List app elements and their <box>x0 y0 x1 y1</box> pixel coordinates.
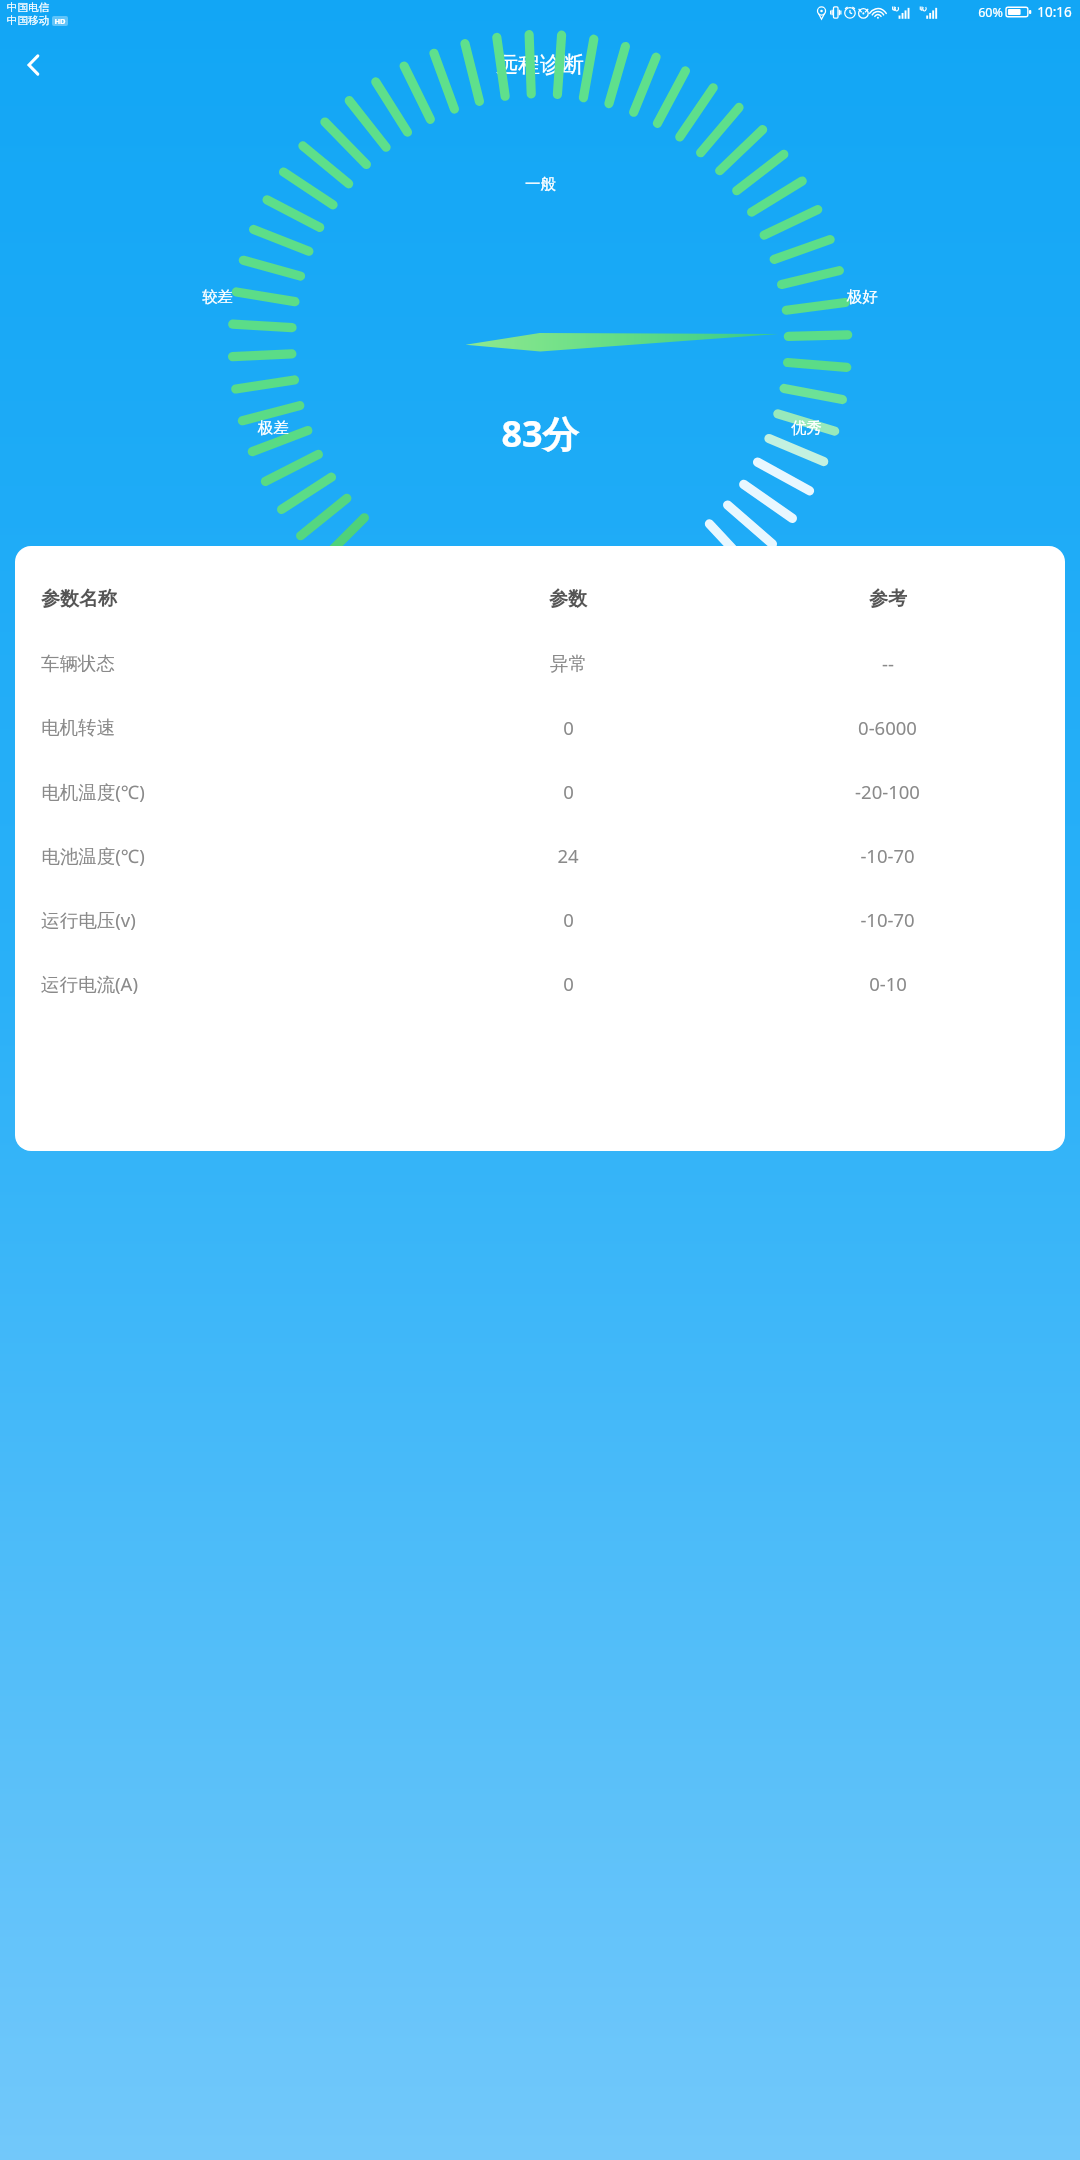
staticText: 运行电流(A) <box>41 971 138 996</box>
button[interactable]: 运行电压(v) <box>15 898 1065 940</box>
staticText: 0-6000 <box>858 715 917 740</box>
staticText: 电池温度(℃) <box>41 843 145 868</box>
staticText: -20-100 <box>855 779 920 804</box>
staticText: 中国电信 <box>7 1 49 14</box>
staticText: -10-70 <box>860 907 915 932</box>
staticText: 极差 <box>258 418 289 438</box>
staticText: 一般 <box>525 174 556 194</box>
staticText: 参考 <box>869 587 907 611</box>
staticText: 极好 <box>847 287 878 307</box>
staticText: 异常 <box>550 652 587 675</box>
staticText: 较差 <box>202 287 233 307</box>
staticText: 0 <box>563 907 574 932</box>
staticText: 车辆状态 <box>41 652 115 675</box>
staticText: 10:16 <box>1037 3 1072 21</box>
staticText: 0-10 <box>869 971 907 996</box>
staticText: -- <box>882 651 894 676</box>
staticText: 优秀 <box>791 418 822 438</box>
button[interactable]: 运行电流(A) <box>15 962 1065 1004</box>
button[interactable]: 参数名称 <box>15 578 1065 620</box>
staticText: 0 <box>563 715 574 740</box>
staticText: 中国移动 <box>7 14 49 27</box>
button[interactable]: 车辆状态 <box>15 642 1065 684</box>
staticText: 0 <box>563 779 574 804</box>
staticText: 83分 <box>501 409 579 458</box>
staticText: -10-70 <box>860 843 915 868</box>
button[interactable]: 电机温度(℃) <box>15 770 1065 812</box>
staticText: 参数 <box>549 587 587 611</box>
staticText: HD <box>54 16 66 26</box>
staticText: 远程诊断 <box>496 51 584 79</box>
button[interactable]: Back <box>6 37 62 93</box>
button[interactable]: 电池温度(℃) <box>15 834 1065 876</box>
staticText: 参数名称 <box>41 587 117 611</box>
staticText: 电机转速 <box>41 716 115 739</box>
staticText: 0 <box>563 971 574 996</box>
button[interactable]: 电机转速 <box>15 706 1065 748</box>
staticText: 24 <box>557 843 579 868</box>
staticText: 电机温度(℃) <box>41 779 145 804</box>
staticText: 运行电压(v) <box>41 907 136 932</box>
staticText: 60% <box>978 4 1003 21</box>
